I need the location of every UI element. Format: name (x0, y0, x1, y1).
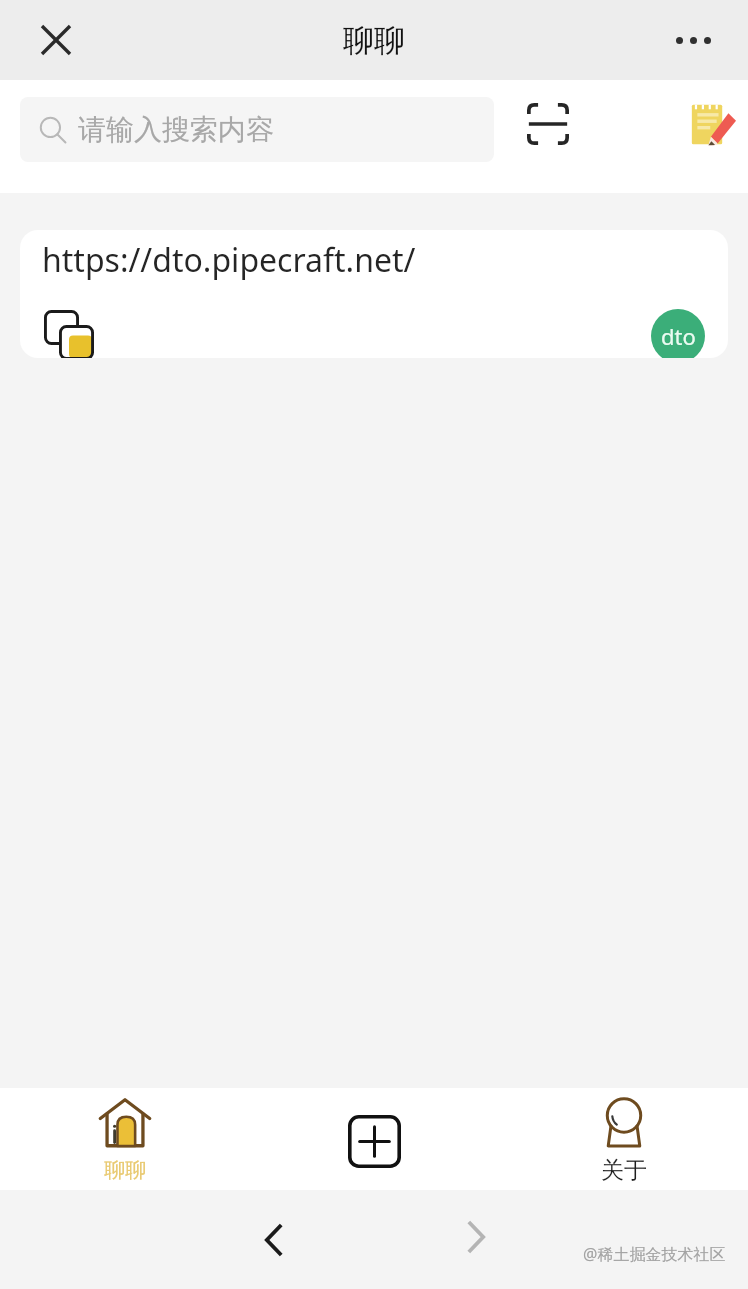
button[interactable]: Back (244, 1210, 304, 1270)
button[interactable]: 请输入搜索内容 (20, 97, 494, 162)
button[interactable]: Copy link (38, 304, 100, 358)
staticText: 关于 (601, 1156, 647, 1185)
staticText: https://dto.pipecraft.net/ (42, 238, 416, 282)
button[interactable]: 关于 (499, 1088, 748, 1190)
staticText: 聊聊 (104, 1157, 146, 1183)
button[interactable]: New note (670, 81, 748, 167)
button[interactable]: Scan QR code (505, 81, 591, 167)
button[interactable]: More options (649, 0, 737, 80)
staticText: dto (661, 321, 696, 351)
button[interactable]: Add (250, 1088, 499, 1190)
staticText: 聊聊 (343, 21, 405, 60)
staticText: @稀土掘金技术社区 (583, 1243, 726, 1265)
button[interactable]: dto (651, 309, 705, 358)
button[interactable]: 聊聊 (0, 1088, 250, 1190)
button[interactable]: Forward (446, 1207, 506, 1267)
button[interactable]: https://dto.pipecraft.net/ (20, 230, 728, 358)
button[interactable]: Close (12, 0, 100, 80)
staticText: 请输入搜索内容 (78, 112, 274, 147)
